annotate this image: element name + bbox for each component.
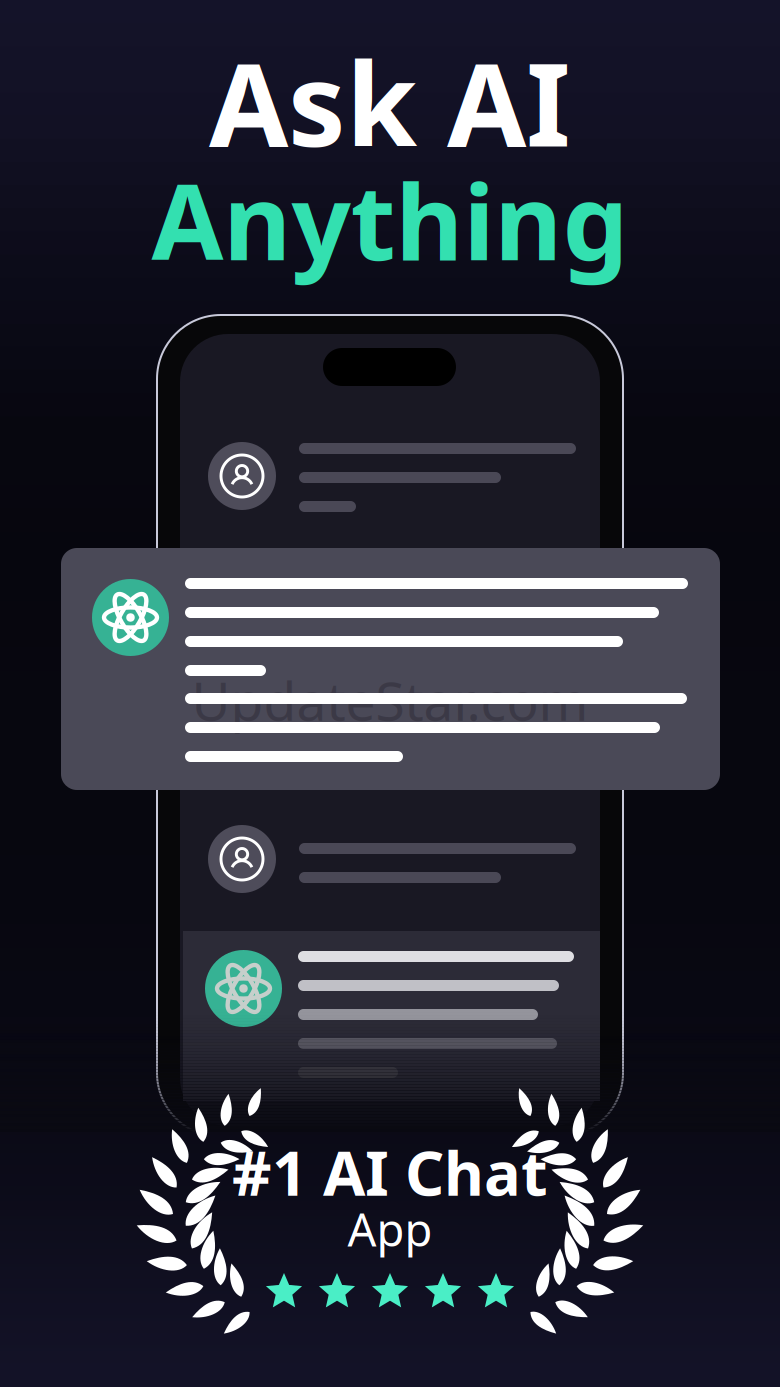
staticText: UpdateStar.com bbox=[191, 665, 588, 735]
staticText: Ask AI bbox=[209, 26, 571, 178]
staticText: Anything bbox=[151, 151, 628, 289]
staticText: App bbox=[347, 1199, 432, 1259]
staticText: #1 AI Chat bbox=[232, 1131, 548, 1213]
